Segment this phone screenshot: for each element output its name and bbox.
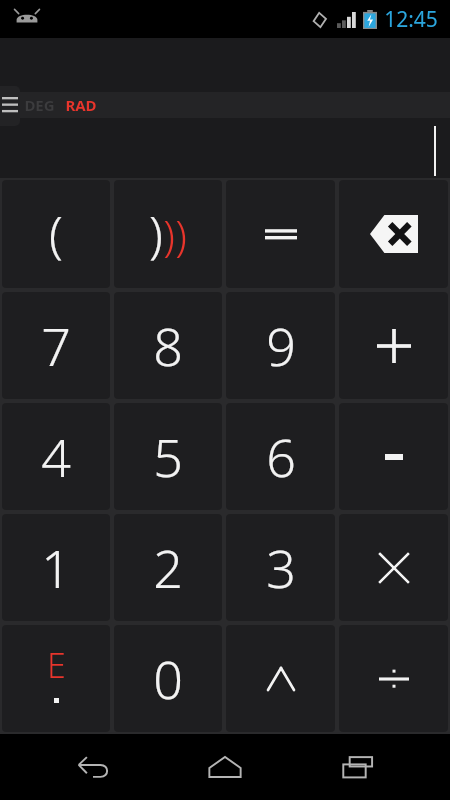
staticText: 3: [266, 532, 296, 603]
button[interactable]: 6: [226, 403, 335, 510]
button[interactable]: 3: [226, 514, 335, 621]
staticText: 5: [153, 421, 183, 492]
button[interactable]: RAD: [65, 95, 97, 115]
staticText: RAD: [65, 95, 97, 115]
button[interactable]: [339, 625, 448, 732]
staticText: 4: [41, 421, 71, 492]
staticText: ): [163, 206, 175, 263]
button[interactable]: 0: [114, 625, 222, 732]
staticText: 9: [266, 310, 296, 381]
staticText: (: [49, 200, 63, 268]
staticText: 12:45: [384, 5, 438, 34]
button[interactable]: (: [2, 180, 110, 288]
button[interactable]: 9: [226, 292, 335, 399]
button[interactable]: [339, 403, 448, 510]
staticText: ): [175, 206, 187, 263]
staticText: DEG: [24, 95, 55, 115]
button[interactable]: Backspace: [339, 180, 448, 288]
staticText: 2: [153, 532, 183, 603]
button[interactable]: [339, 514, 448, 621]
staticText: 7: [41, 310, 71, 381]
button[interactable]: 7: [2, 292, 110, 399]
button[interactable]: Menu: [0, 86, 20, 126]
button[interactable]: 4: [2, 403, 110, 510]
staticText: 6: [266, 421, 296, 492]
button[interactable]: DEG: [24, 95, 55, 115]
button[interactable]: E: [2, 625, 110, 732]
staticText: E: [47, 642, 66, 688]
button[interactable]: Home: [185, 734, 265, 800]
button[interactable]: 1: [2, 514, 110, 621]
button[interactable]: [226, 625, 335, 732]
staticText: ): [149, 200, 163, 268]
button[interactable]: ): [114, 180, 222, 288]
button[interactable]: [226, 180, 335, 288]
button[interactable]: Back: [53, 734, 133, 800]
staticText: 1: [41, 532, 71, 603]
staticText: 8: [153, 310, 183, 381]
button[interactable]: Recent apps: [318, 734, 398, 800]
button[interactable]: [339, 292, 448, 399]
button[interactable]: 8: [114, 292, 222, 399]
button[interactable]: 5: [114, 403, 222, 510]
button[interactable]: 2: [114, 514, 222, 621]
staticText: 0: [153, 643, 183, 714]
other: Backspace: [370, 213, 418, 255]
